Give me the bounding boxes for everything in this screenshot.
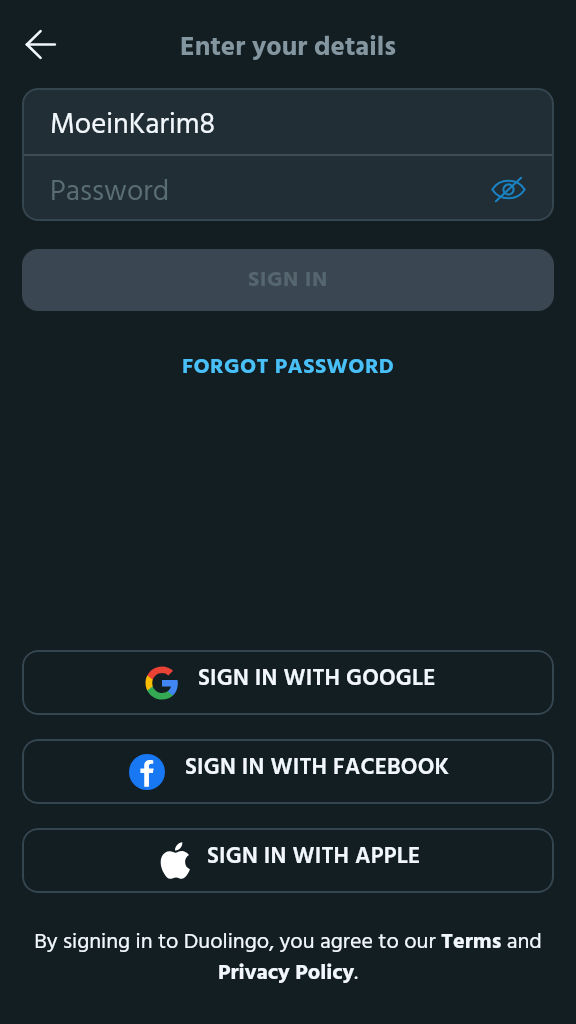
button[interactable]: FORGOT PASSWORD [164,341,413,394]
staticText: SIGN IN WITH FACEBOOK [185,750,450,787]
staticText: SIGN IN WITH GOOGLE [198,661,436,698]
button[interactable]: SIGN IN WITH APPLE [22,828,554,893]
staticText: MoeinKarim8 [50,102,216,148]
button[interactable]: Password [22,156,554,221]
button[interactable]: MoeinKarim8 [22,88,554,154]
staticText: FORGOT PASSWORD [182,350,395,385]
staticText: SIGN IN [248,263,328,298]
button[interactable]: SIGN IN [22,249,554,311]
staticText: By signing in to Duolingo, you agree to … [26,925,550,991]
button[interactable]: Show password [486,167,530,211]
button[interactable]: SIGN IN WITH FACEBOOK [22,739,554,804]
staticText: Password [50,169,170,215]
button[interactable]: SIGN IN WITH GOOGLE [22,650,554,715]
button[interactable]: Back [11,14,71,74]
staticText: SIGN IN WITH APPLE [207,839,421,876]
staticText: Enter your details [0,27,576,70]
